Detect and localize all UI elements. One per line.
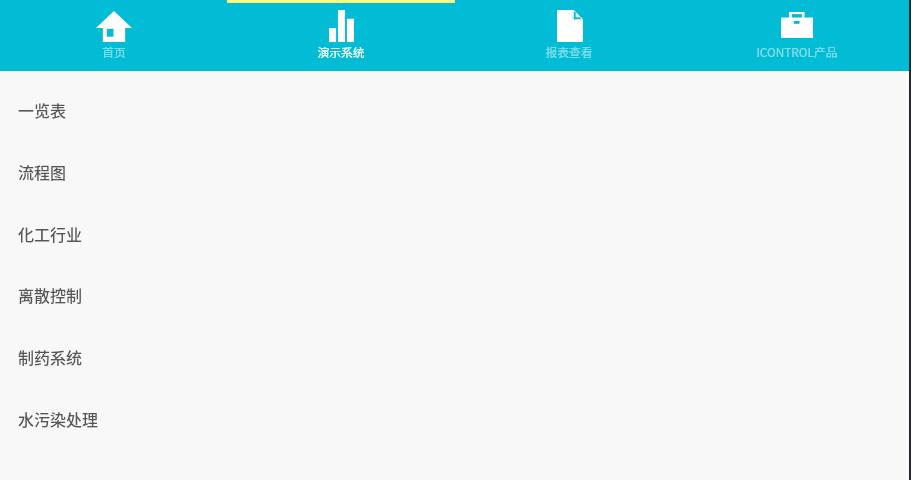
other: ICONTROL产品	[781, 12, 813, 38]
button[interactable]: 流程图	[0, 140, 911, 202]
other: 演示系统	[329, 10, 354, 42]
button[interactable]: 离散控制	[0, 263, 911, 325]
button[interactable]: 制药系统	[0, 325, 911, 387]
staticText: ICONTROL产品	[756, 43, 838, 60]
staticText: 报表查看	[545, 43, 593, 60]
button[interactable]: 演示系统	[227, 0, 455, 71]
staticText: 化工行业	[18, 222, 83, 245]
other: 报表查看	[557, 10, 583, 42]
staticText: 离散控制	[18, 283, 83, 306]
button[interactable]: 报表查看	[455, 0, 683, 71]
staticText: 水污染处理	[18, 407, 99, 430]
button[interactable]: 首页	[0, 0, 227, 71]
button[interactable]: ICONTROL产品	[683, 0, 911, 71]
staticText: 演示系统	[317, 43, 365, 60]
staticText: 一览表	[18, 98, 67, 121]
button[interactable]: 水污染处理	[0, 387, 911, 449]
other: 首页	[96, 11, 132, 42]
staticText: 制药系统	[18, 345, 83, 368]
button[interactable]: 化工行业	[0, 202, 911, 264]
staticText: 流程图	[18, 160, 67, 183]
button[interactable]: 一览表	[0, 78, 911, 140]
staticText: 首页	[102, 43, 126, 60]
